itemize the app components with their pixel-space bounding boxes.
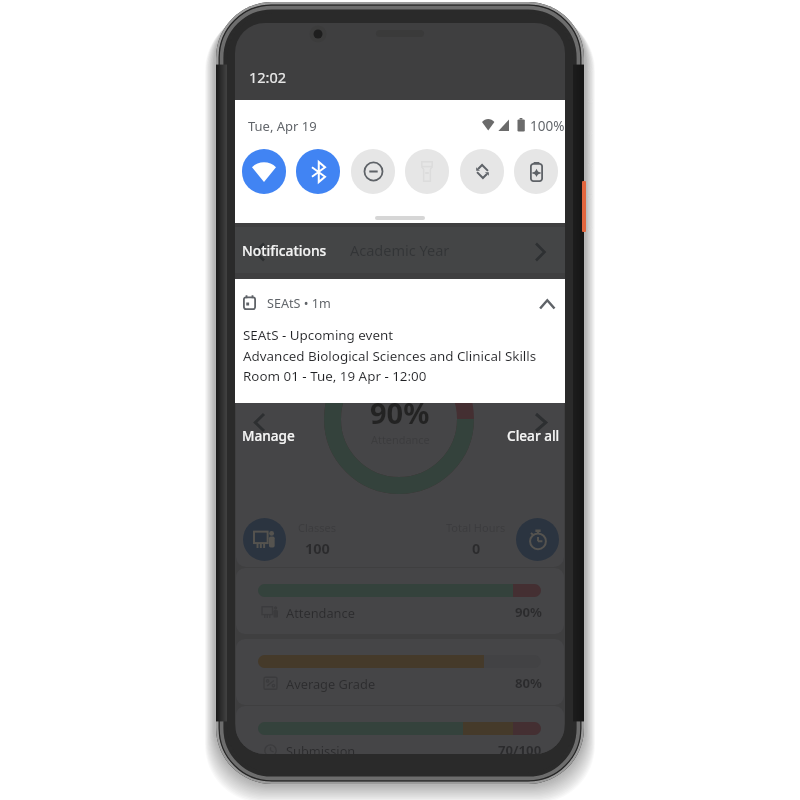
button[interactable]: Average Grade bbox=[236, 639, 564, 705]
staticText: 100% bbox=[530, 117, 565, 135]
button[interactable]: Classes bbox=[243, 518, 286, 561]
staticText: Advanced Biological Sciences and Clinica… bbox=[243, 347, 537, 365]
staticText: SEAtS - Upcoming event bbox=[243, 326, 394, 344]
staticText: Manage bbox=[242, 426, 295, 445]
staticText: 70/100 bbox=[498, 741, 542, 754]
button[interactable]: Manage bbox=[235, 420, 303, 451]
staticText: Academic Year bbox=[350, 240, 450, 260]
button[interactable]: Bluetooth bbox=[296, 149, 340, 194]
staticText: Tue, Apr 19 bbox=[248, 117, 317, 135]
button[interactable]: Notifications bbox=[235, 236, 335, 265]
staticText: Attendance bbox=[286, 604, 355, 621]
staticText: Average Grade bbox=[286, 675, 376, 692]
staticText: 12:02 bbox=[249, 67, 287, 87]
staticText: Submission bbox=[286, 742, 356, 754]
button[interactable]: Battery saver bbox=[514, 149, 558, 194]
staticText: 80% bbox=[515, 674, 542, 692]
staticText: 90% bbox=[515, 603, 542, 621]
button[interactable]: Auto-rotate bbox=[460, 149, 504, 194]
button[interactable]: Submission bbox=[236, 706, 564, 754]
staticText: SEAtS • 1m bbox=[267, 295, 331, 312]
staticText: Clear all bbox=[507, 426, 560, 445]
staticText: 0 bbox=[472, 538, 481, 558]
button[interactable]: 90% bbox=[236, 285, 564, 567]
button[interactable]: SEAtS • 1m bbox=[235, 279, 565, 403]
button[interactable]: Collapse notification bbox=[533, 293, 561, 317]
button[interactable]: Attendance bbox=[236, 568, 564, 634]
staticText: Room 01 - Tue, 19 Apr - 12:00 bbox=[243, 367, 427, 385]
staticText: 100 bbox=[305, 538, 330, 558]
button[interactable]: Total hours bbox=[516, 518, 559, 561]
button[interactable]: Flashlight bbox=[405, 149, 449, 194]
button[interactable]: Do not disturb bbox=[351, 149, 395, 194]
button[interactable]: Wi-Fi bbox=[242, 149, 286, 194]
button[interactable]: Clear all bbox=[499, 420, 565, 451]
staticText: 90% bbox=[370, 393, 430, 432]
staticText: Notifications bbox=[242, 241, 327, 260]
button[interactable]: Academic Year bbox=[235, 227, 565, 273]
